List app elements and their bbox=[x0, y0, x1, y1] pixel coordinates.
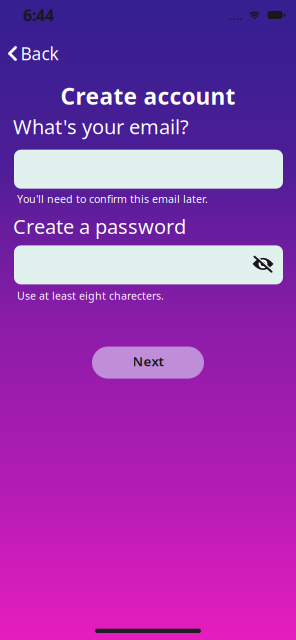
staticText: Create account bbox=[60, 81, 235, 111]
button[interactable]: Next bbox=[92, 347, 204, 379]
staticText: Back bbox=[20, 42, 58, 65]
staticText: What's your email? bbox=[13, 113, 189, 140]
staticText: Use at least eight charecters. bbox=[17, 288, 164, 303]
staticText: Create a password bbox=[13, 213, 186, 239]
button[interactable]: Back bbox=[8, 42, 58, 65]
staticText: 6:44 bbox=[23, 4, 54, 26]
button[interactable]: Show password bbox=[251, 255, 283, 275]
staticText: Next bbox=[132, 352, 163, 370]
staticText: You'll need to confirm this email later. bbox=[17, 192, 208, 206]
